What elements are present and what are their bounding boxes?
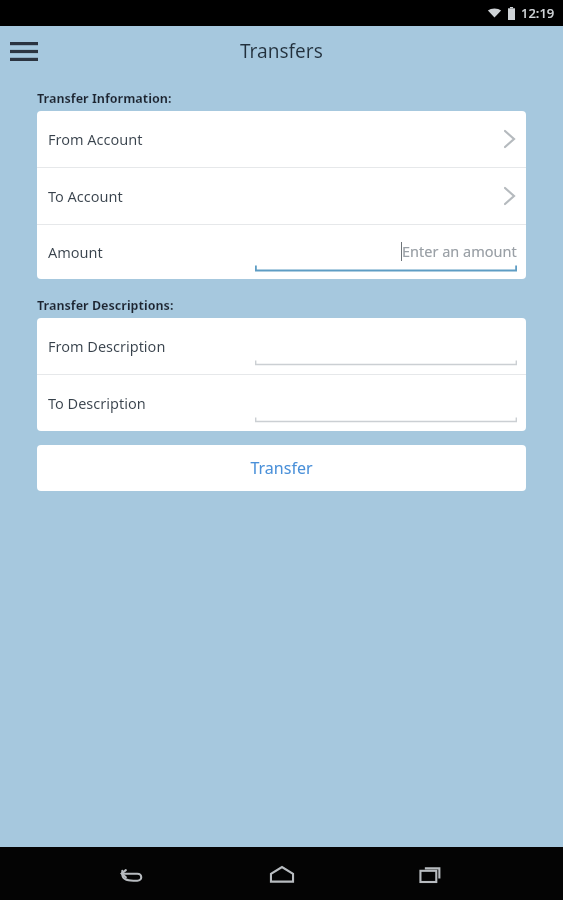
button[interactable]: Home [260,852,304,896]
staticText: 12:19 [521,4,555,22]
staticText: From Description [48,336,166,356]
staticText: To Account [48,186,123,206]
staticText: Transfer Information: [37,90,172,107]
button[interactable]: Amount [37,225,526,279]
staticText: To Description [48,393,146,413]
staticText: Transfers [240,38,323,64]
staticText: Amount [48,242,103,262]
staticText: Enter an amount [402,241,517,261]
staticText: From Account [48,129,143,149]
button[interactable]: From Account [37,111,526,167]
button[interactable]: Recent apps [409,852,453,896]
staticText: Transfer [250,457,313,479]
button[interactable]: Transfer [37,445,526,491]
button[interactable]: To Account [37,168,526,224]
button[interactable]: From Description [37,318,526,374]
button[interactable]: Back [110,852,154,896]
staticText: Transfer Descriptions: [37,297,174,314]
button[interactable]: Open navigation menu [6,33,42,69]
button[interactable]: To Description [37,375,526,431]
